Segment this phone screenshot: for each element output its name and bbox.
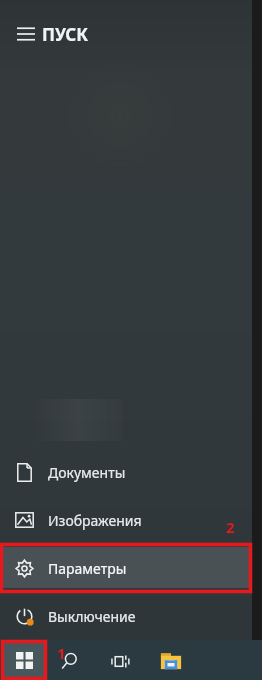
button[interactable]: Выключение (0, 596, 252, 636)
staticText: 2 (226, 517, 235, 537)
staticText: Документы (48, 463, 126, 482)
button[interactable]: Start (4, 643, 44, 677)
staticText: 1 (57, 643, 66, 663)
button[interactable]: Task view (108, 649, 132, 673)
button[interactable]: Изображения (0, 500, 252, 540)
button[interactable]: Search (56, 648, 82, 674)
staticText: Изображения (48, 511, 142, 530)
button[interactable]: File Explorer (158, 648, 184, 674)
staticText: ПУСК (42, 23, 88, 46)
button[interactable]: Документы (0, 452, 252, 492)
staticText: Параметры (48, 559, 127, 578)
button[interactable]: Menu (8, 16, 44, 52)
staticText: Выключение (48, 607, 136, 626)
button[interactable]: Параметры (0, 548, 252, 588)
